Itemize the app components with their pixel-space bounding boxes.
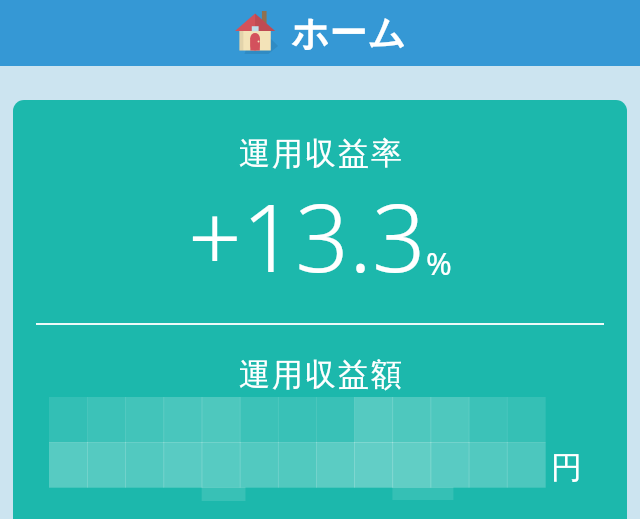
staticText: 運用収益額	[238, 355, 403, 394]
staticText: %	[426, 242, 452, 284]
staticText: 円	[551, 448, 582, 487]
button[interactable]: Home	[0, 0, 640, 66]
other: Home	[233, 9, 281, 57]
button[interactable]: 運用収益率	[13, 100, 627, 519]
staticText: 運用収益率	[238, 134, 403, 173]
staticText: ホーム	[291, 10, 407, 57]
staticText: +13.3	[188, 172, 426, 300]
